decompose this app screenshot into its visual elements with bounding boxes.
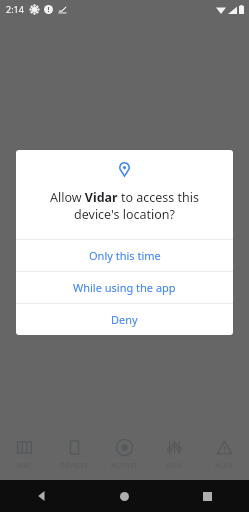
staticText: DEVICES bbox=[60, 461, 89, 470]
staticText: MAP bbox=[17, 461, 33, 470]
staticText: Deny bbox=[111, 312, 138, 327]
staticText: ACTIVIT bbox=[111, 461, 138, 470]
button[interactable]: Home bbox=[83, 480, 166, 512]
button[interactable]: ACTIVIT bbox=[99, 428, 149, 480]
staticText: Allow Vidar to access this device's loca… bbox=[30, 189, 219, 223]
staticText: ALAR bbox=[215, 461, 233, 470]
button[interactable]: Deny bbox=[16, 304, 233, 335]
button[interactable]: Back bbox=[0, 480, 83, 512]
staticText: 2:14 bbox=[6, 3, 24, 15]
button[interactable]: Only this time bbox=[16, 240, 233, 271]
staticText: MEN bbox=[166, 461, 182, 470]
staticText: Only this time bbox=[89, 248, 161, 263]
button[interactable]: While using the app bbox=[16, 272, 233, 303]
button[interactable]: Recent apps bbox=[166, 480, 249, 512]
staticText: While using the app bbox=[73, 280, 176, 295]
